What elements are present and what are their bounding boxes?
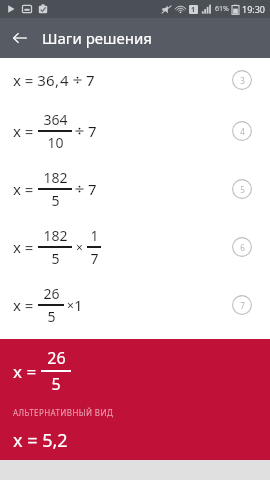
staticText: 7 <box>240 300 245 311</box>
button[interactable]: x = <box>0 218 270 276</box>
staticText: , <box>55 70 60 90</box>
staticText: × <box>76 239 83 255</box>
staticText: 6 <box>240 242 245 253</box>
staticText: 10 <box>47 133 64 152</box>
staticText: 61% <box>215 4 229 14</box>
staticText: 364 <box>43 110 68 129</box>
staticText: 5 <box>51 249 60 268</box>
staticText: 1 <box>90 226 99 245</box>
staticText: 5 <box>240 184 245 195</box>
button[interactable]: x = 36 <box>0 58 270 102</box>
staticText: x = <box>13 179 38 199</box>
staticText: x = <box>13 295 38 315</box>
button[interactable]: Назад <box>0 18 40 58</box>
button[interactable]: x = <box>0 276 270 334</box>
staticText: 5 <box>51 373 61 395</box>
staticText: × <box>67 297 74 313</box>
staticText: x = 36 <box>13 70 55 90</box>
staticText: АЛЬТЕРНАТИВНЫЙ ВИД <box>13 407 114 418</box>
button[interactable]: x = <box>0 160 270 218</box>
staticText: 26 <box>43 284 60 303</box>
staticText: 1 <box>191 5 196 14</box>
staticText: x = <box>13 121 38 141</box>
staticText: 19:30 <box>242 3 266 15</box>
staticText: 4 <box>240 126 245 137</box>
staticText: x = <box>13 360 41 383</box>
staticText: Шаги решения <box>42 28 152 48</box>
staticText: 182 <box>43 226 68 245</box>
staticText: 7 <box>90 249 99 268</box>
staticText: 1 <box>74 295 83 315</box>
staticText: 5 <box>51 191 60 210</box>
staticText: 4 <box>60 70 73 90</box>
staticText: 3 <box>240 75 245 86</box>
button[interactable]: x = <box>0 102 270 160</box>
staticText: 7 <box>84 121 97 141</box>
staticText: 7 <box>84 179 97 199</box>
staticText: 5 <box>47 307 56 326</box>
staticText: 182 <box>43 168 68 187</box>
staticText: x = <box>13 237 38 257</box>
staticText: x = 5,2 <box>13 428 68 453</box>
staticText: 26 <box>47 347 66 369</box>
staticText: 7 <box>82 70 95 90</box>
button[interactable]: x = <box>0 339 270 460</box>
